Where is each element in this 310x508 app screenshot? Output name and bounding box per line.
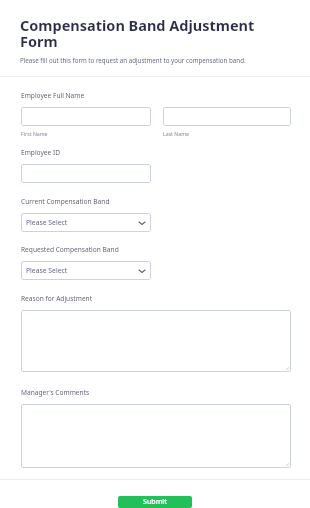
staticText: First Name — [21, 130, 48, 137]
button[interactable] — [21, 164, 151, 183]
staticText: Please fill out this form to request an … — [20, 56, 246, 64]
button[interactable] — [21, 310, 291, 372]
button[interactable]: Please Select — [21, 261, 151, 280]
staticText: Reason for Adjustment — [21, 294, 93, 303]
staticText: Please Select — [26, 266, 68, 275]
staticText: Compensation Band Adjustment Form — [20, 15, 290, 52]
staticText: Employee Full Name — [21, 91, 85, 100]
staticText: Please Select — [26, 218, 68, 227]
staticText: Current Compensation Band — [21, 197, 110, 206]
button[interactable]: Please Select — [21, 213, 151, 232]
staticText: Submit — [143, 497, 167, 507]
staticText: Employee ID — [21, 148, 61, 157]
staticText: Requested Compensation Band — [21, 245, 119, 254]
button[interactable] — [163, 107, 291, 126]
button[interactable]: Submit — [118, 496, 192, 508]
button[interactable] — [21, 107, 151, 126]
staticText: Last Name — [163, 130, 189, 137]
button[interactable] — [21, 404, 291, 468]
staticText: Manager's Comments — [21, 388, 90, 397]
